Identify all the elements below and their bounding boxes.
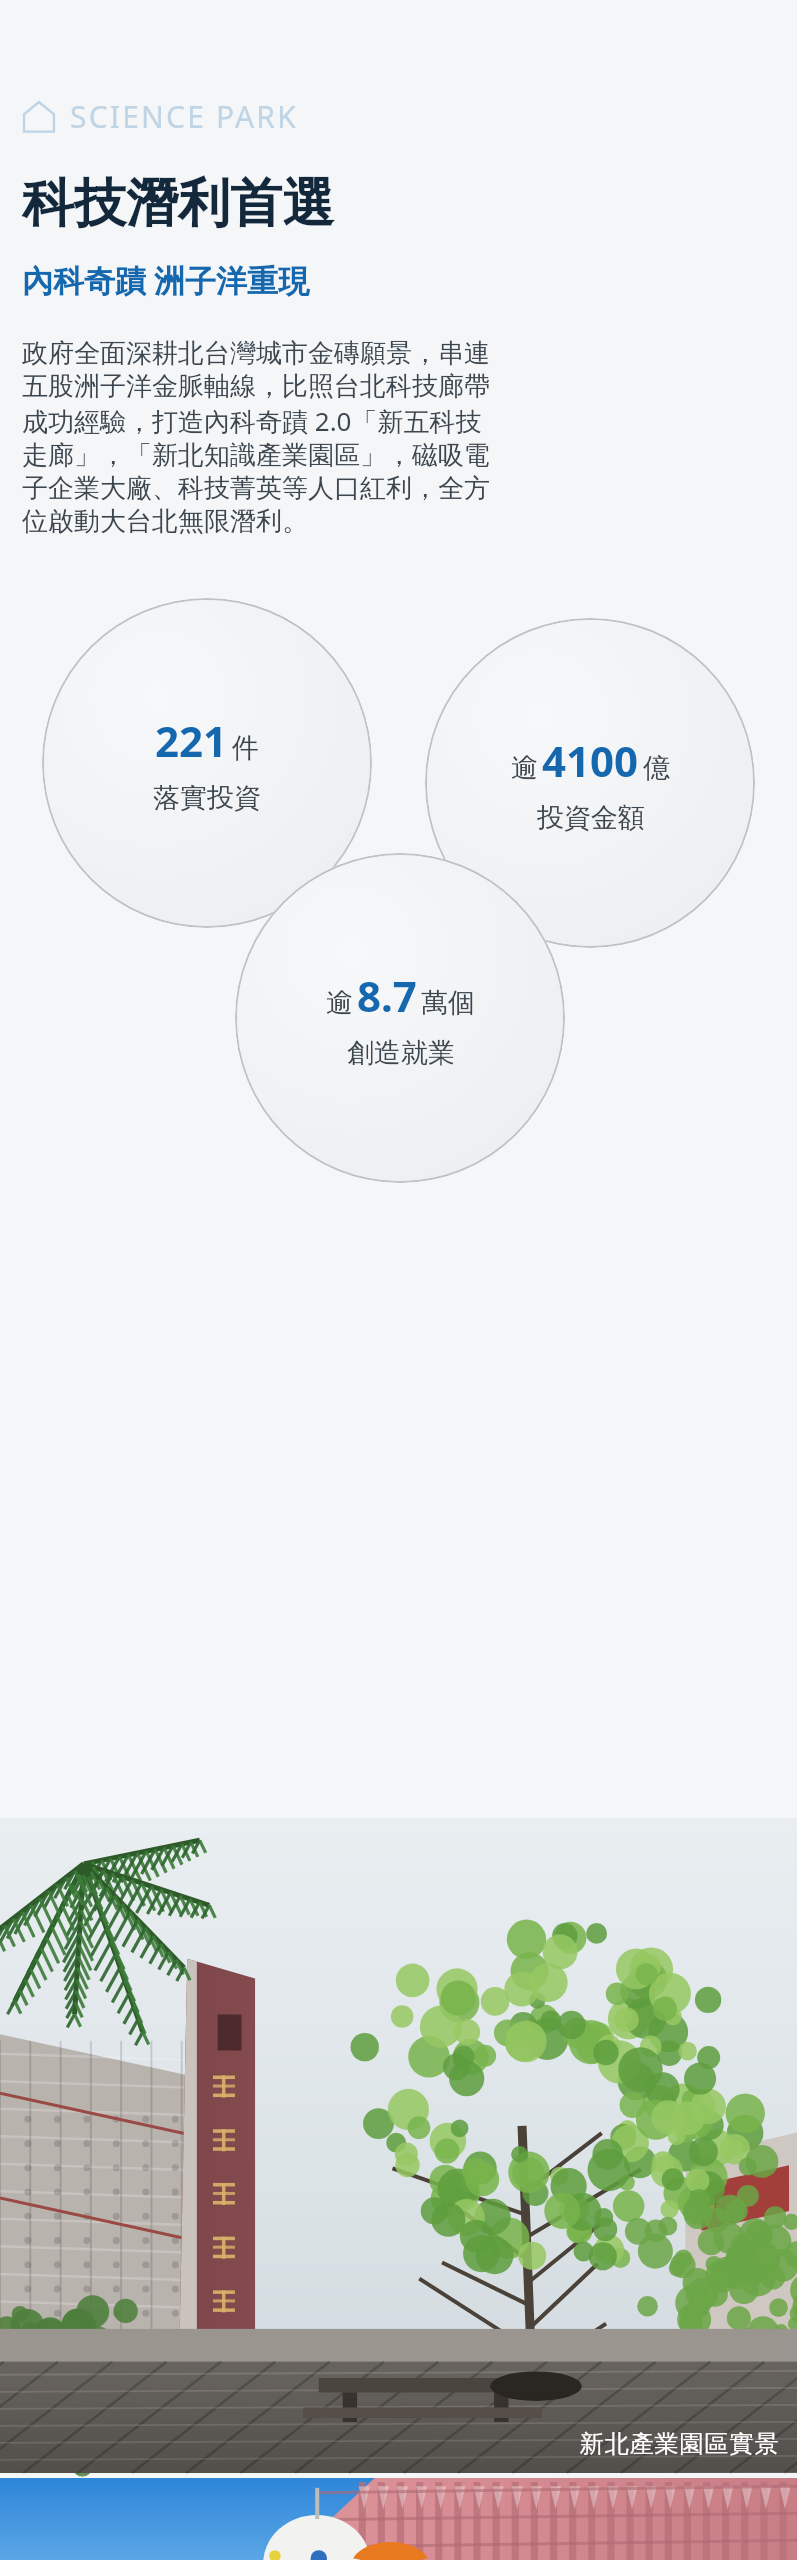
staticText: 221 <box>155 712 228 769</box>
staticText: 內科奇蹟 洲子洋重現 <box>22 259 310 301</box>
button[interactable] <box>0 2478 797 2560</box>
staticText: 逾 <box>326 986 353 1020</box>
button[interactable]: 逾 <box>235 853 565 1183</box>
staticText: 創造就業 <box>347 1036 455 1070</box>
button[interactable]: 逾 <box>425 618 755 948</box>
staticText: 走廊」，「新北知識產業園區」，磁吸電 <box>22 439 490 472</box>
staticText: 投資金額 <box>537 801 645 835</box>
staticText: SCIENCE PARK <box>70 96 298 137</box>
staticText: 新北產業園區實景 <box>579 2429 779 2459</box>
button[interactable]: 221 <box>42 598 372 928</box>
staticText: 科技潛利首選 <box>22 171 334 237</box>
button[interactable]: 新北產業園區實景 <box>0 1818 797 2473</box>
staticText: 萬個 <box>421 986 475 1020</box>
staticText: 五股洲子洋金脈軸線，比照台北科技廊帶 <box>22 370 490 403</box>
staticText: 件 <box>232 731 259 765</box>
button[interactable]: SCIENCE PARK <box>22 96 298 137</box>
staticText: 成功經驗，打造內科奇蹟 2.0「新五科技 <box>22 403 482 439</box>
staticText: 位啟動大台北無限潛利。 <box>22 505 308 538</box>
staticText: 落實投資 <box>153 781 261 815</box>
staticText: 政府全面深耕北台灣城市金磚願景，串連 <box>22 337 490 370</box>
staticText: 子企業大廠、科技菁英等人口紅利，全方 <box>22 472 490 505</box>
staticText: 億 <box>643 751 670 785</box>
staticText: 逾 <box>511 751 538 785</box>
staticText: 8.7 <box>357 967 417 1024</box>
staticText: 4100 <box>542 732 639 789</box>
